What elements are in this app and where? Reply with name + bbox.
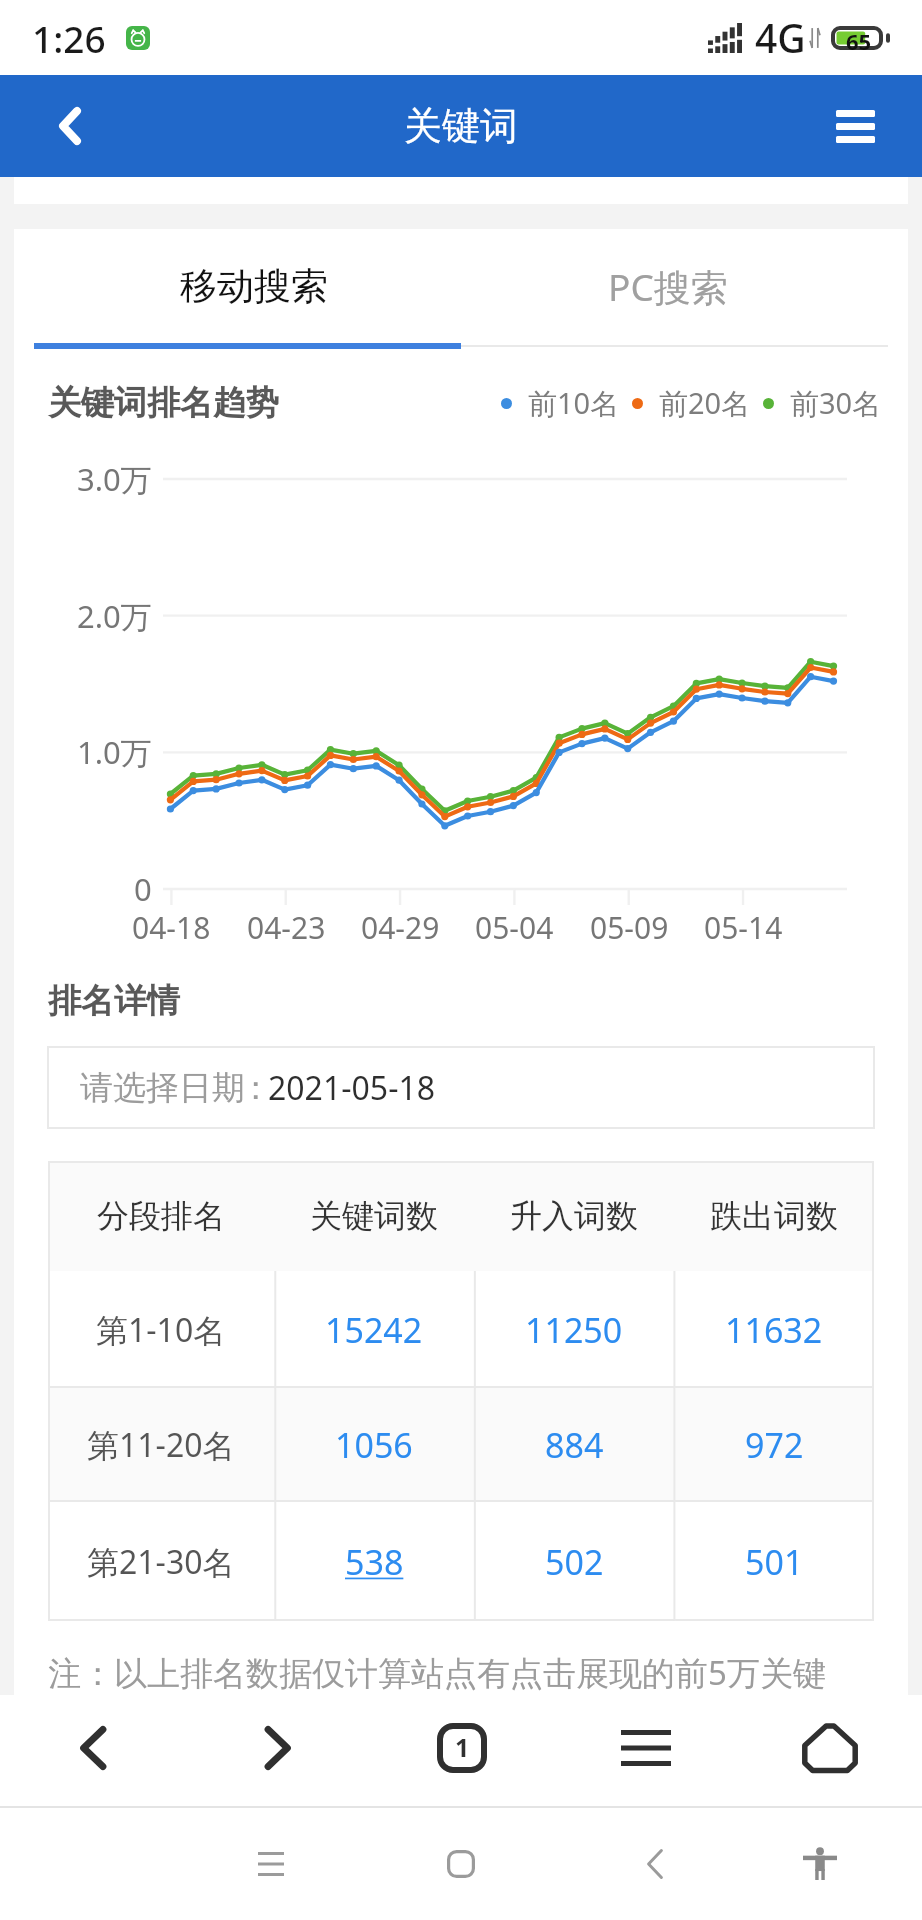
staticText: 第11-20名 — [87, 1423, 235, 1467]
staticText: ： — [239, 1067, 272, 1109]
button[interactable]: Menu — [554, 1695, 738, 1808]
staticText: 关键词数 — [310, 1196, 438, 1236]
button[interactable]: Tabs — [370, 1695, 554, 1808]
staticText: 972 — [745, 1422, 804, 1468]
staticText: 1.0万 — [77, 731, 152, 773]
staticText: 15242 — [325, 1307, 423, 1353]
staticText: 关键词 — [404, 102, 518, 150]
staticText: 501 — [745, 1539, 804, 1585]
staticText: 0 — [134, 868, 152, 910]
staticText: 05-09 — [590, 907, 669, 948]
button[interactable]: Forward — [185, 1695, 370, 1808]
button[interactable]: Recents — [227, 1820, 315, 1908]
button[interactable]: 884 — [474, 1388, 674, 1502]
staticText: 移动搜索 — [180, 263, 328, 310]
button[interactable]: Back — [0, 75, 140, 177]
staticText: 4G — [755, 11, 806, 64]
button[interactable]: Home — [417, 1820, 505, 1908]
staticText: 注：以上排名数据仅计算站点有点击展现的前5万关键 — [48, 1650, 826, 1695]
button[interactable]: 501 — [674, 1502, 874, 1621]
staticText: 第1-10名 — [96, 1308, 226, 1352]
staticText: 第21-30名 — [87, 1540, 235, 1584]
button[interactable]: Accessibility — [776, 1820, 864, 1908]
staticText: 11632 — [725, 1307, 823, 1353]
staticText: 关键词排名趋势 — [48, 382, 279, 424]
staticText: 04-18 — [132, 907, 211, 948]
staticText: 2021-05-18 — [268, 1066, 436, 1110]
button[interactable]: 1056 — [274, 1388, 474, 1502]
button[interactable]: Home — [738, 1695, 922, 1808]
staticText: 前10名 — [528, 383, 620, 423]
staticText: 请选择日期 — [80, 1067, 245, 1109]
staticText: 502 — [545, 1539, 604, 1585]
button[interactable]: 15242 — [274, 1271, 474, 1388]
staticText: 前20名 — [659, 383, 751, 423]
staticText: 65 — [846, 26, 872, 50]
staticText: 05-04 — [475, 907, 554, 948]
button[interactable]: 972 — [674, 1388, 874, 1502]
staticText: 1056 — [335, 1422, 413, 1468]
button[interactable]: 502 — [474, 1502, 674, 1621]
button[interactable]: 请选择日期 — [48, 1047, 874, 1128]
staticText: PC搜索 — [608, 261, 728, 312]
staticText: 排名详情 — [48, 980, 180, 1022]
staticText: 04-29 — [361, 907, 440, 948]
staticText: 前30名 — [790, 383, 882, 423]
staticText: 分段排名 — [97, 1196, 225, 1236]
button[interactable]: Back — [611, 1820, 699, 1908]
button[interactable]: Menu — [788, 75, 922, 177]
button[interactable]: 11250 — [474, 1271, 674, 1388]
staticText: 538 — [345, 1539, 404, 1585]
staticText: 884 — [545, 1422, 604, 1468]
staticText: 3.0万 — [77, 458, 152, 500]
staticText: 1 — [455, 1730, 470, 1764]
button[interactable]: 538 — [274, 1502, 474, 1621]
button[interactable]: 11632 — [674, 1271, 874, 1388]
button[interactable]: Back — [0, 1695, 185, 1808]
button[interactable]: 移动搜索 — [134, 229, 374, 343]
staticText: 04-23 — [247, 907, 326, 948]
staticText: 2.0万 — [77, 595, 152, 637]
button[interactable]: PC搜索 — [548, 229, 788, 343]
staticText: 升入词数 — [510, 1196, 638, 1236]
staticText: 1:26 — [32, 13, 106, 63]
staticText: 11250 — [525, 1307, 623, 1353]
staticText: 跌出词数 — [710, 1196, 838, 1236]
staticText: 05-14 — [704, 907, 783, 948]
